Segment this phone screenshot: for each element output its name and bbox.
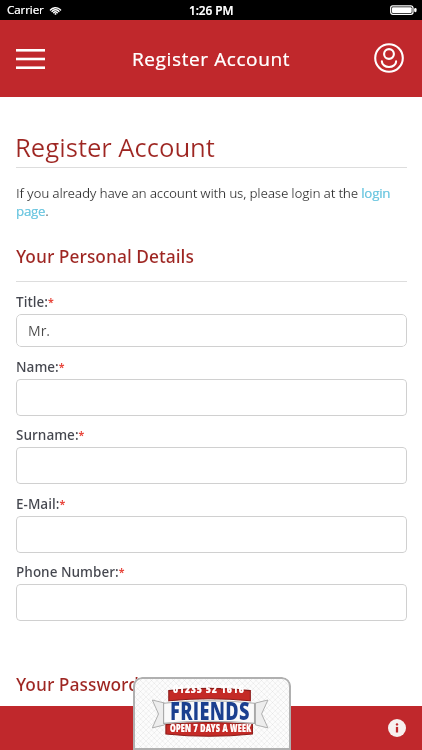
button[interactable] bbox=[16, 516, 407, 553]
staticText: Mr. bbox=[28, 321, 51, 340]
staticText: Surname:* bbox=[16, 426, 85, 444]
button[interactable]: Account bbox=[367, 36, 411, 80]
button[interactable]: Mr. bbox=[16, 314, 407, 347]
staticText: 01235 52 1616 bbox=[173, 682, 245, 696]
staticText: Name:* bbox=[16, 358, 65, 376]
button[interactable] bbox=[16, 379, 407, 416]
button[interactable] bbox=[16, 447, 407, 484]
staticText: FRIENDS bbox=[170, 694, 250, 727]
staticText: Your Password bbox=[16, 673, 139, 697]
staticText: Phone Number:* bbox=[16, 563, 125, 581]
staticText: Title:* bbox=[16, 293, 54, 311]
staticText: Register Account bbox=[15, 130, 215, 165]
button[interactable]: Info bbox=[380, 711, 414, 745]
staticText: Carrier bbox=[7, 2, 44, 18]
button[interactable]: Menu bbox=[2, 34, 59, 84]
staticText: E-Mail:* bbox=[16, 495, 66, 513]
staticText: If you already have an account with us, … bbox=[16, 184, 407, 220]
button[interactable]: Friends logo bbox=[133, 677, 291, 750]
button[interactable] bbox=[16, 584, 407, 621]
staticText: 1:26 PM bbox=[189, 2, 234, 18]
staticText: Your Personal Details bbox=[16, 245, 194, 269]
staticText: Register Account bbox=[132, 46, 290, 72]
staticText: OPEN 7 DAYS A WEEK bbox=[170, 720, 252, 735]
